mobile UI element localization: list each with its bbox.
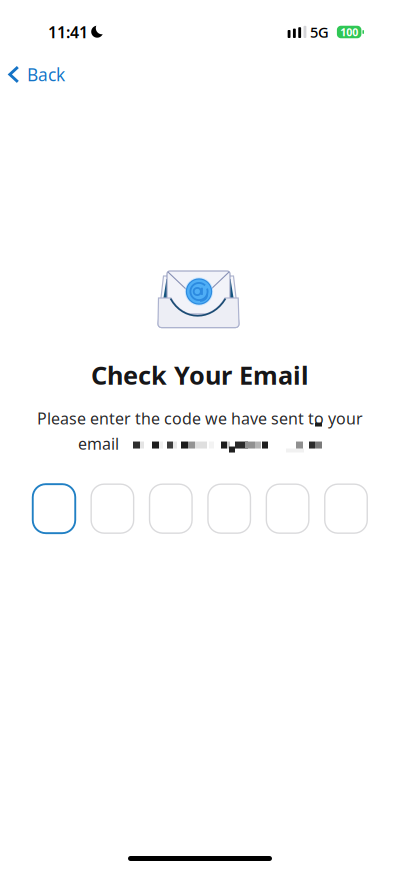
button[interactable]: Verification code digit bbox=[150, 484, 192, 533]
button[interactable]: Back bbox=[0, 48, 79, 90]
button[interactable]: Verification code digit bbox=[266, 484, 309, 533]
staticText: 11:41 bbox=[48, 21, 88, 43]
button[interactable]: Verification code digit bbox=[91, 484, 134, 533]
staticText: 5G bbox=[310, 22, 329, 42]
staticText: Please enter the code we have sent to yo… bbox=[37, 408, 363, 429]
staticText: 100 bbox=[340, 25, 358, 39]
button[interactable]: Verification code digit bbox=[325, 484, 367, 533]
staticText: Back bbox=[27, 63, 65, 86]
button[interactable]: Verification code digit bbox=[33, 484, 75, 533]
staticText: email bbox=[78, 433, 119, 454]
staticText: Check Your Email bbox=[91, 358, 309, 392]
button[interactable]: Verification code digit bbox=[208, 484, 250, 533]
